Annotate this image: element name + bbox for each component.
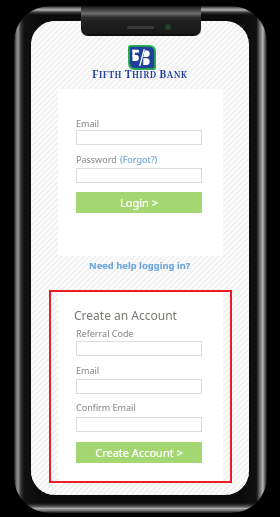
button[interactable]: Text field	[76, 417, 202, 432]
staticText: Email	[76, 117, 100, 129]
button[interactable]: Create Account >	[76, 442, 202, 463]
staticText: Login >	[120, 195, 158, 210]
staticText: Password	[76, 153, 120, 165]
staticText: Email	[76, 364, 100, 376]
staticText: Create Account >	[95, 445, 183, 460]
staticText: Referral Code	[76, 327, 134, 339]
button[interactable]: (Forgot?)	[120, 153, 158, 165]
button[interactable]: Text field	[76, 379, 202, 394]
button[interactable]: Text field	[76, 341, 202, 356]
staticText: FIFTH THIRD BANK	[92, 67, 188, 81]
button[interactable]: Login >	[76, 192, 202, 213]
button[interactable]: Text field	[76, 130, 202, 145]
staticText: Create an Account	[74, 307, 177, 323]
staticText: Need help logging in?	[89, 259, 191, 272]
button[interactable]: Need help logging in?	[86, 256, 194, 275]
staticText: Confirm Email	[76, 401, 136, 413]
button[interactable]: Text field	[76, 168, 202, 183]
